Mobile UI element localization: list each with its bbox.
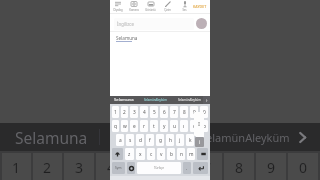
staticText: f (149, 137, 151, 144)
button[interactable]: 7 (170, 106, 178, 118)
staticText: t (153, 123, 155, 130)
button[interactable]: 9 (190, 106, 198, 118)
staticText: 6 (163, 109, 166, 116)
button[interactable]: 3 (130, 106, 138, 118)
button[interactable]: j (176, 134, 184, 146)
button[interactable]: m (187, 148, 195, 160)
button[interactable]: Enter (193, 162, 208, 174)
button[interactable]: Shift (112, 148, 123, 160)
button[interactable]: 6 (160, 153, 190, 180)
button[interactable]: f (146, 134, 154, 146)
button[interactable]: Diyalog (110, 0, 126, 13)
button[interactable]: 4 (140, 106, 148, 118)
staticText: m (189, 151, 194, 158)
staticText: 1 (12, 158, 21, 177)
staticText: w (123, 123, 127, 130)
staticText: 2 (43, 158, 52, 177)
staticText: 1 (114, 109, 117, 116)
button[interactable]: 0 (288, 153, 318, 180)
button[interactable]: SelamünAleyküm (200, 130, 290, 145)
staticText: c (150, 151, 153, 158)
staticText: 6 (171, 158, 180, 177)
staticText: 2 (123, 109, 126, 116)
button[interactable]: Sym (112, 162, 125, 174)
button[interactable]: 8 (180, 106, 188, 118)
button[interactable]: g (156, 134, 164, 146)
staticText: 0 (299, 158, 308, 177)
button[interactable]: Çizim (159, 0, 176, 13)
button[interactable]: 2 (33, 153, 62, 180)
button[interactable]: u (170, 120, 178, 132)
button[interactable]: 1 (2, 153, 31, 180)
button[interactable]: Selamuna (15, 127, 88, 148)
staticText: l (199, 137, 201, 144)
button[interactable]: a (116, 134, 124, 146)
button[interactable]: h (166, 134, 174, 146)
button[interactable]: v (157, 148, 165, 160)
staticText: SelamünAleyküm (144, 98, 167, 102)
button[interactable]: 5 (128, 153, 158, 180)
button[interactable]: 5 (150, 106, 158, 118)
staticText: h (169, 137, 172, 144)
button[interactable]: w (121, 120, 128, 132)
button[interactable]: b (167, 148, 175, 160)
button[interactable]: More suggestions (291, 123, 313, 151)
button[interactable]: 9 (256, 153, 286, 180)
staticText: b (170, 151, 173, 158)
button[interactable]: Görüntü (142, 0, 159, 13)
button[interactable]: İngilizce (114, 18, 194, 30)
button[interactable]: x (136, 148, 145, 160)
staticText: Görüntü (145, 8, 156, 12)
staticText: y (163, 123, 166, 130)
button[interactable]: 0 (200, 106, 208, 118)
button[interactable]: 6 (160, 106, 168, 118)
button[interactable]: d (136, 134, 144, 146)
button[interactable]: z (125, 148, 134, 160)
staticText: x (139, 151, 142, 158)
staticText: p (203, 123, 206, 130)
button[interactable]: 1 (112, 106, 119, 118)
staticText: Selamuna (114, 97, 134, 103)
button[interactable]: Türkçe (137, 162, 181, 174)
staticText: 9 (267, 158, 276, 177)
button[interactable]: n (177, 148, 185, 160)
staticText: Diyalog (113, 8, 123, 12)
staticText: 4 (107, 158, 116, 177)
staticText: Ses (182, 8, 187, 12)
button[interactable]: Account (196, 18, 207, 29)
staticText: n (180, 151, 183, 158)
staticText: SelamünAleyküm (200, 130, 290, 145)
button[interactable]: Keyboard settings (127, 162, 135, 174)
button[interactable]: k (186, 134, 194, 146)
button[interactable]: ı (180, 120, 188, 132)
button[interactable]: Backspace (197, 148, 208, 160)
button[interactable]: 7 (192, 153, 222, 180)
staticText: i (199, 139, 201, 145)
button[interactable]: s (126, 134, 134, 146)
button[interactable]: Ses (176, 0, 193, 13)
staticText: 7 (203, 158, 212, 177)
staticText: 8 (235, 158, 244, 177)
button[interactable]: Kamera (126, 0, 142, 13)
button[interactable]: 8 (224, 153, 254, 180)
staticText: o (193, 123, 196, 130)
button[interactable]: KAYDET (193, 4, 207, 9)
staticText: a (119, 137, 122, 144)
button[interactable]: p (200, 120, 208, 132)
button[interactable]: 4 (96, 153, 126, 180)
staticText: › (206, 97, 208, 103)
button[interactable]: o (190, 120, 198, 132)
button[interactable]: y (160, 120, 168, 132)
button[interactable]: q (112, 120, 119, 132)
button[interactable]: l (196, 134, 204, 146)
staticText: 5 (139, 158, 148, 177)
button[interactable]: 2 (121, 106, 128, 118)
button[interactable]: r (140, 120, 148, 132)
button[interactable]: 3 (64, 153, 94, 180)
staticText: u (173, 123, 176, 130)
button[interactable]: . (183, 162, 191, 174)
button[interactable]: More suggestions (203, 96, 210, 104)
button[interactable]: e (130, 120, 138, 132)
button[interactable]: t (150, 120, 158, 132)
button[interactable]: c (147, 148, 155, 160)
